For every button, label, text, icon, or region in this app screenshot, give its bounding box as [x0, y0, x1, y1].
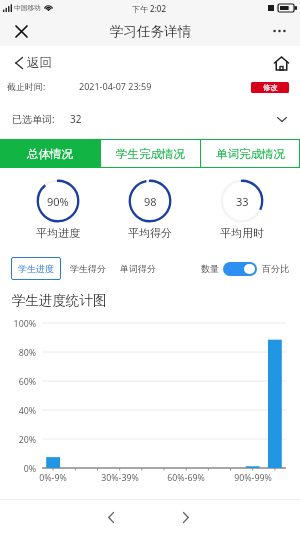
staticText: 学生进度 — [18, 263, 54, 274]
button[interactable]: Home — [270, 52, 292, 74]
staticText: 百分比 — [262, 263, 289, 274]
staticText: 40% — [18, 405, 36, 417]
staticText: 60% — [18, 376, 36, 388]
staticText: 学习任务详情 — [110, 23, 191, 40]
button[interactable]: 修改 — [251, 82, 289, 93]
button[interactable]: Close — [9, 19, 33, 43]
button[interactable]: 总体情况 — [0, 139, 100, 168]
button[interactable]: 单词得分 — [120, 259, 156, 278]
button[interactable]: 返回 — [14, 52, 53, 74]
button[interactable]: Previous page — [94, 500, 128, 534]
staticText: 学生完成情况 — [116, 147, 185, 161]
staticText: 截止时间: — [7, 80, 46, 92]
staticText: 90% — [47, 194, 69, 209]
staticText: 90%-99% — [234, 472, 272, 484]
button[interactable]: 学生进度 — [11, 257, 61, 280]
button[interactable]: Toggle count or percentage — [223, 262, 257, 276]
staticText: 平均用时 — [220, 226, 264, 240]
staticText: 100% — [13, 318, 36, 330]
staticText: 0%-9% — [39, 472, 67, 484]
button[interactable]: 单词完成情况 — [201, 139, 300, 168]
staticText: 80% — [18, 347, 36, 359]
staticText: 30%-39% — [101, 472, 139, 484]
staticText: 修改 — [263, 83, 278, 92]
staticText: 60%-69% — [167, 472, 205, 484]
staticText: 32 — [70, 112, 82, 126]
button[interactable]: 学生得分 — [70, 259, 106, 278]
staticText: 98 — [144, 194, 157, 209]
button[interactable]: Next page — [169, 500, 203, 534]
staticText: 平均得分 — [128, 226, 172, 240]
staticText: 返回 — [27, 55, 52, 71]
staticText: 平均进度 — [36, 226, 80, 240]
staticText: 数量 — [201, 263, 219, 274]
staticText: 单词得分 — [120, 263, 156, 274]
staticText: 中国移动 — [14, 4, 41, 12]
staticText: 学生进度统计图 — [12, 292, 107, 309]
staticText: 总体情况 — [27, 147, 73, 161]
staticText: 下午 2:02 — [132, 3, 166, 14]
staticText: 33 — [236, 194, 249, 209]
staticText: 0% — [23, 463, 36, 475]
staticText: 已选单词: — [12, 112, 55, 126]
button[interactable]: 学生完成情况 — [101, 139, 200, 168]
staticText: 20% — [18, 434, 36, 446]
staticText: 学生得分 — [70, 263, 106, 274]
staticText: 2021-04-07 23:59 — [79, 80, 152, 92]
button[interactable]: More options — [267, 19, 291, 43]
button[interactable]: Expand word list — [272, 109, 292, 129]
staticText: 单词完成情况 — [216, 147, 285, 161]
